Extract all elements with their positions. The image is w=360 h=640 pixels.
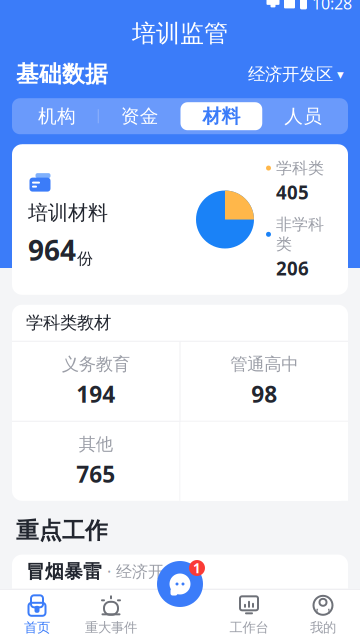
button[interactable]: 人员 [262, 102, 344, 130]
button[interactable]: 资金 [99, 102, 181, 130]
staticText: 冒烟暴雷 [26, 560, 102, 583]
staticText: 培训监管 [132, 19, 228, 48]
staticText: 基础数据 [16, 60, 108, 88]
staticText: 学科类教材 [26, 312, 111, 333]
staticText: 资金 [121, 105, 159, 128]
staticText: 非学科类 [276, 215, 324, 254]
button[interactable]: 重大事件 [74, 588, 148, 640]
button[interactable]: 材料 [180, 102, 262, 130]
staticText: 194 [76, 379, 115, 409]
staticText: 首页 [24, 619, 50, 636]
staticText: 964 [28, 231, 76, 268]
button[interactable]: 机构 [16, 102, 98, 130]
staticText: 13 [83, 617, 109, 640]
staticText: 待处理 [239, 592, 290, 613]
staticText: 98 [251, 379, 277, 409]
staticText: 材料 [202, 105, 240, 128]
staticText: 人员 [284, 105, 322, 128]
staticText: 10:28 [312, 0, 352, 14]
staticText: 405 [276, 180, 309, 205]
staticText: · [107, 561, 111, 582]
button[interactable]: Messages [148, 552, 212, 616]
staticText: 学科类 [276, 158, 324, 178]
staticText: 其他 [79, 434, 113, 455]
staticText: 线索总数 [62, 592, 130, 613]
staticText: 经济开发区 [116, 562, 196, 581]
staticText: 工作台 [229, 619, 268, 636]
staticText: 管通高中 [230, 354, 298, 375]
staticText: 机构 [38, 105, 76, 128]
button[interactable]: 工作台 [212, 588, 286, 640]
staticText: 份 [77, 249, 93, 268]
button[interactable]: 经济开发区 [248, 64, 344, 85]
staticText: 经济开发区 [248, 64, 333, 85]
staticText: 765 [76, 459, 115, 489]
staticText: ▾ [337, 67, 344, 82]
staticText: 1 [193, 559, 201, 577]
staticText: 重大事件 [85, 619, 137, 636]
staticText: 我的 [310, 619, 336, 636]
staticText: 206 [276, 256, 309, 281]
staticText: 义务教育 [62, 354, 130, 375]
staticText: 培训材料 [28, 201, 108, 225]
staticText: 重点工作 [16, 517, 108, 545]
button[interactable]: 首页 [0, 588, 74, 640]
staticText: 3 [258, 617, 271, 640]
button[interactable]: 我的 [286, 588, 360, 640]
